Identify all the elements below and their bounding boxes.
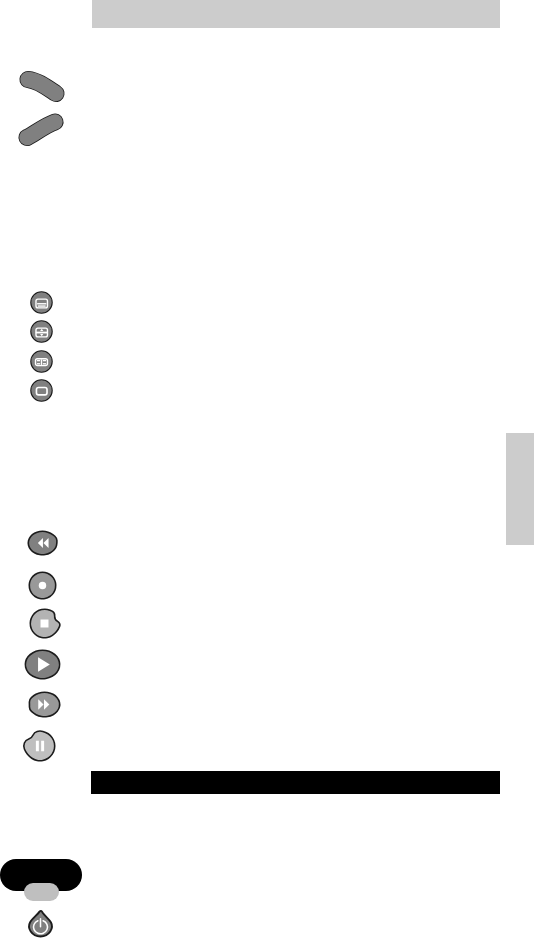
button[interactable]: Stop: [29, 608, 60, 639]
button[interactable]: Handle: [24, 883, 59, 901]
button[interactable]: Pause: [24, 730, 56, 762]
button[interactable]: Fast forward: [28, 691, 61, 718]
button[interactable]: Power: [28, 910, 53, 937]
button[interactable]: Curved marks: [14, 64, 70, 152]
button[interactable]: Record: [28, 571, 57, 600]
button[interactable]: Split screen horizontally: [30, 350, 53, 373]
button[interactable]: Rewind: [27, 530, 58, 556]
button[interactable]: Play: [24, 649, 61, 680]
button[interactable]: Subtitles: [30, 291, 53, 314]
button[interactable]: Pill button: [0, 859, 82, 891]
button[interactable]: Full screen: [30, 379, 53, 402]
button[interactable]: Split screen vertically: [30, 320, 53, 343]
